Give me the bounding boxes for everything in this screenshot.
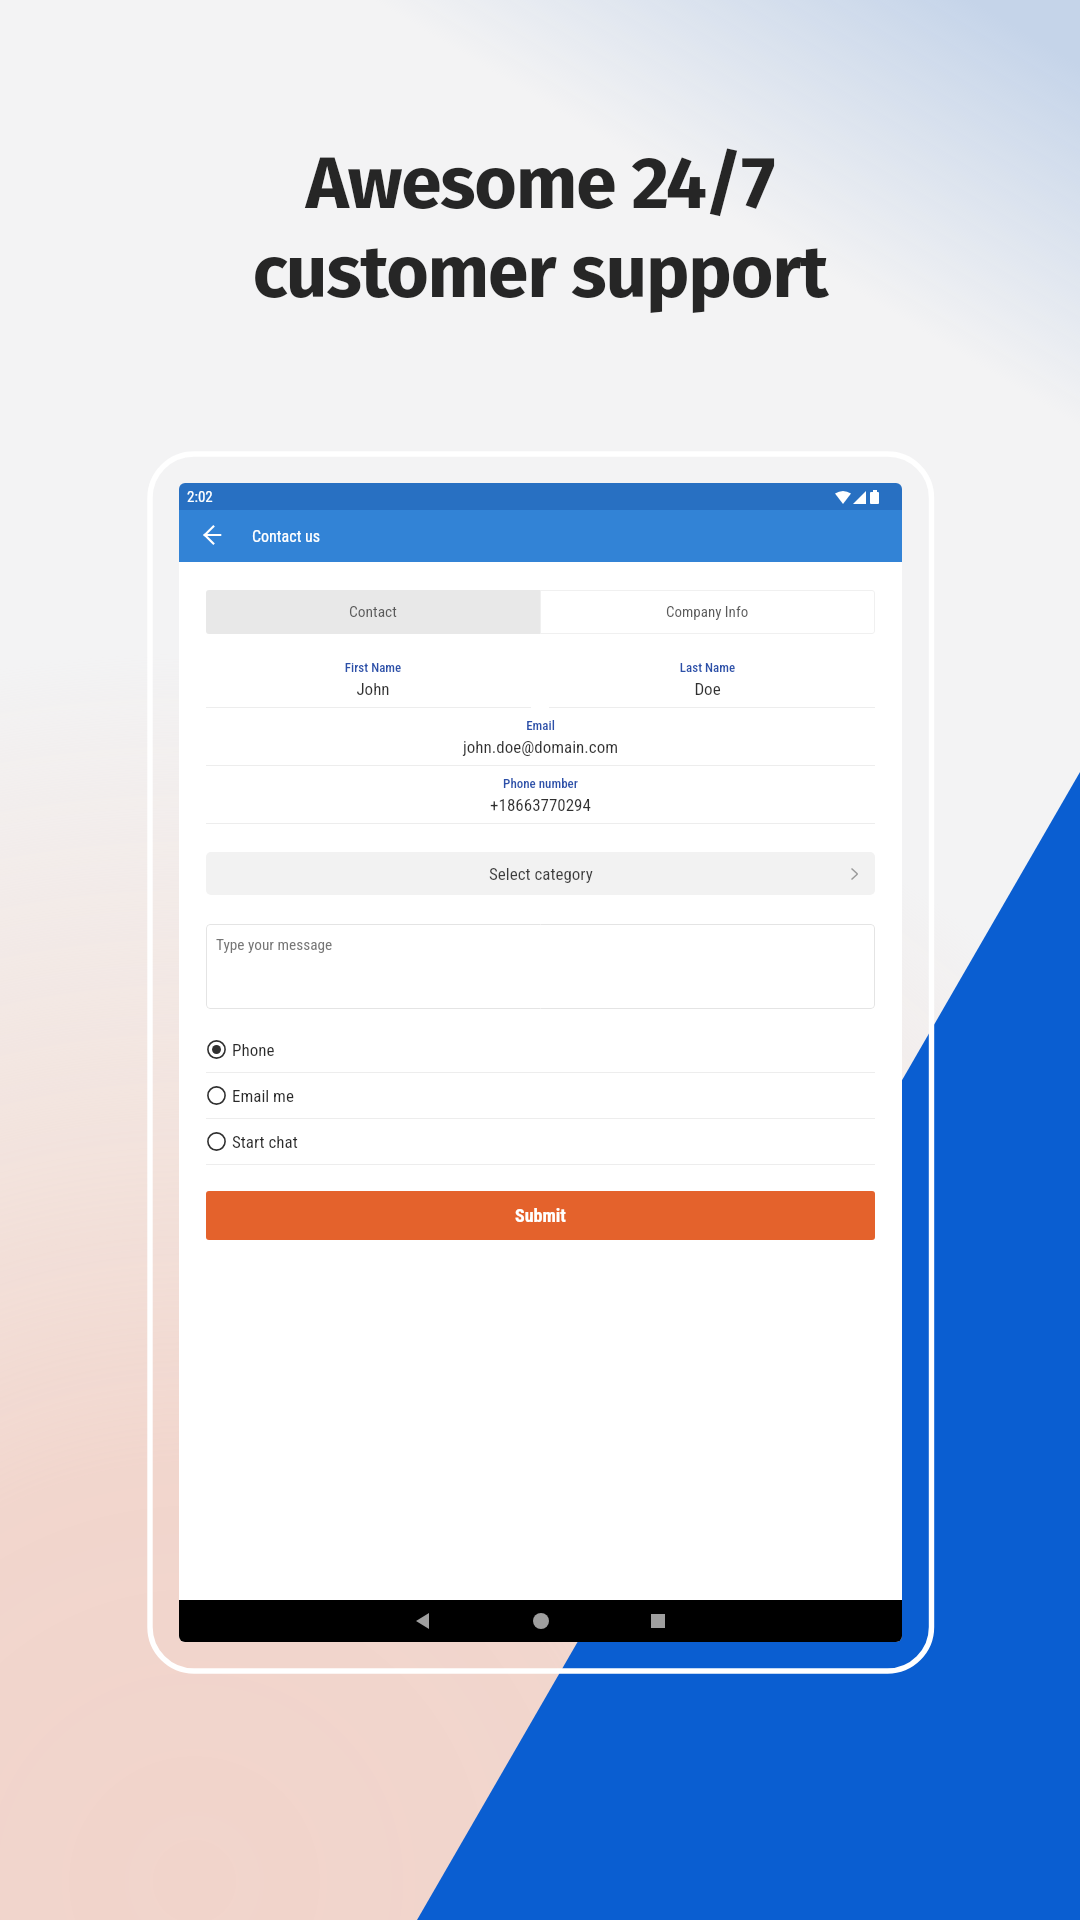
- staticText: First Name: [206, 660, 540, 675]
- staticText: Company Info: [666, 603, 749, 621]
- staticText: Contact: [349, 603, 397, 621]
- button[interactable]: Email: [206, 708, 875, 766]
- staticText: Email me: [232, 1086, 294, 1106]
- button[interactable]: Select category: [206, 852, 875, 895]
- button[interactable]: Back: [401, 1600, 445, 1642]
- staticText: Submit: [515, 1205, 566, 1226]
- button[interactable]: Start chat: [206, 1119, 875, 1165]
- staticText: Start chat: [232, 1132, 298, 1152]
- staticText: Contact us: [252, 527, 321, 546]
- staticText: Phone: [232, 1040, 275, 1060]
- button[interactable]: Phone number: [206, 766, 875, 824]
- button[interactable]: Recent apps: [636, 1600, 680, 1642]
- button[interactable]: First Name: [206, 650, 540, 708]
- staticText: john.doe@domain.com: [206, 737, 875, 757]
- staticText: Email: [206, 718, 875, 733]
- staticText: Last Name: [540, 660, 875, 675]
- button[interactable]: Home: [519, 1600, 563, 1642]
- staticText: Phone number: [206, 776, 875, 791]
- button[interactable]: Last Name: [540, 650, 875, 708]
- button[interactable]: Phone: [206, 1027, 875, 1073]
- button[interactable]: Back: [200, 524, 224, 548]
- button[interactable]: Company Info: [540, 590, 875, 634]
- staticText: Select category: [489, 864, 593, 884]
- staticText: Awesome 24/7 customer support: [0, 140, 1080, 317]
- staticText: +18663770294: [206, 795, 875, 815]
- button[interactable]: Email me: [206, 1073, 875, 1119]
- staticText: Doe: [540, 679, 875, 699]
- staticText: John: [206, 679, 540, 699]
- staticText: 2:02: [187, 488, 213, 506]
- button[interactable]: Type your message: [206, 924, 875, 1009]
- button[interactable]: Submit: [206, 1191, 875, 1240]
- button[interactable]: Contact: [206, 590, 540, 634]
- staticText: Type your message: [216, 936, 333, 954]
